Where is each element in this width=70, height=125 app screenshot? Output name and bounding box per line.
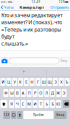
button[interactable]: В (15, 89, 20, 97)
staticText: Ввод (56, 113, 64, 117)
staticText: 123 (4, 113, 10, 117)
staticText: Н (31, 79, 34, 85)
staticText: Кто и зачем редактирует изменяет? И (пок… (1, 12, 62, 47)
staticText: О (39, 90, 42, 96)
button[interactable]: Р (32, 89, 37, 97)
staticText: Ю (56, 101, 60, 107)
button[interactable]: О (38, 89, 43, 97)
button[interactable]: Ввод (54, 111, 67, 119)
button[interactable]: З (53, 78, 58, 86)
staticText: 12:49 (31, 0, 40, 4)
staticText: Ъ (66, 79, 69, 85)
staticText: Ш (42, 79, 46, 85)
button[interactable]: Ц (6, 78, 11, 86)
staticText: И (33, 101, 36, 107)
staticText: Г (37, 79, 39, 85)
button[interactable]: Ю (56, 100, 61, 108)
button[interactable]: Н (30, 78, 35, 86)
button[interactable]: Отправить (50, 5, 70, 10)
staticText: П (28, 90, 31, 96)
staticText: Ф (4, 90, 7, 96)
staticText: Щ (48, 79, 52, 85)
staticText: Ь (46, 101, 48, 107)
staticText: МТС (8, 0, 13, 4)
button[interactable]: Э (62, 89, 67, 97)
button[interactable]: Отпр. (60, 59, 68, 63)
button[interactable]: Ш (41, 78, 46, 86)
button[interactable]: Диктовка (17, 111, 22, 119)
button[interactable]: Удалить (63, 100, 70, 108)
button[interactable]: К (18, 78, 23, 86)
button[interactable]: П (27, 89, 32, 97)
staticText: Х (60, 79, 62, 85)
button[interactable]: Й (0, 78, 5, 86)
button[interactable]: Ъ (65, 78, 70, 86)
button[interactable]: А (21, 89, 26, 97)
staticText: Л (45, 90, 48, 96)
button[interactable]: С (21, 100, 26, 108)
staticText: С (22, 101, 25, 107)
button[interactable]: Я (9, 100, 14, 108)
staticText: М (27, 101, 31, 107)
button[interactable]: Г (35, 78, 40, 86)
button[interactable]: Чаты (0, 5, 14, 10)
button[interactable]: Ф (3, 89, 8, 97)
staticText: В (16, 90, 19, 96)
staticText: Камера-торг (19, 5, 44, 10)
staticText: Отправить (50, 5, 69, 10)
staticText: Э (63, 90, 66, 96)
staticText: Т (40, 101, 42, 107)
staticText: Ц (7, 79, 10, 85)
button[interactable]: Ь (44, 100, 49, 108)
button[interactable]: И (32, 100, 37, 108)
staticText: У (14, 79, 16, 85)
button[interactable]: Е (24, 78, 29, 86)
staticText: Д (51, 90, 54, 96)
staticText: К (19, 79, 22, 85)
button[interactable]: Сменить язык (11, 111, 16, 119)
button[interactable]: Щ (47, 78, 52, 86)
button[interactable]: 123 (3, 111, 10, 119)
staticText: “” (23, 69, 25, 75)
button[interactable]: Ж (56, 89, 61, 97)
button[interactable]: Верхний регистр (0, 100, 7, 108)
staticText: Ы (10, 90, 13, 96)
button[interactable]: Т (38, 100, 43, 108)
staticText: А (22, 90, 25, 96)
staticText: Отпр. (60, 59, 68, 63)
staticText: Я (10, 101, 13, 107)
staticText: Б (51, 101, 53, 107)
staticText: Е (25, 79, 27, 85)
button[interactable]: Ч (15, 100, 20, 108)
staticText: Пробел (33, 113, 44, 117)
staticText: Ж (56, 90, 60, 96)
staticText: Ч (16, 101, 19, 107)
button[interactable]: У (12, 78, 17, 86)
button[interactable]: Ы (9, 89, 14, 97)
staticText: З (54, 79, 56, 85)
button[interactable]: Х (59, 78, 64, 86)
staticText: Р (34, 90, 36, 96)
staticText: 72% (59, 0, 65, 4)
button[interactable]: Пробел (23, 111, 53, 119)
button[interactable]: М (27, 100, 32, 108)
button[interactable]: Л (44, 89, 49, 97)
staticText: Й (1, 79, 4, 85)
button[interactable]: Б (50, 100, 55, 108)
button[interactable]: Камера (1, 58, 7, 63)
staticText: Чаты (4, 5, 14, 10)
button[interactable]: Д (50, 89, 55, 97)
